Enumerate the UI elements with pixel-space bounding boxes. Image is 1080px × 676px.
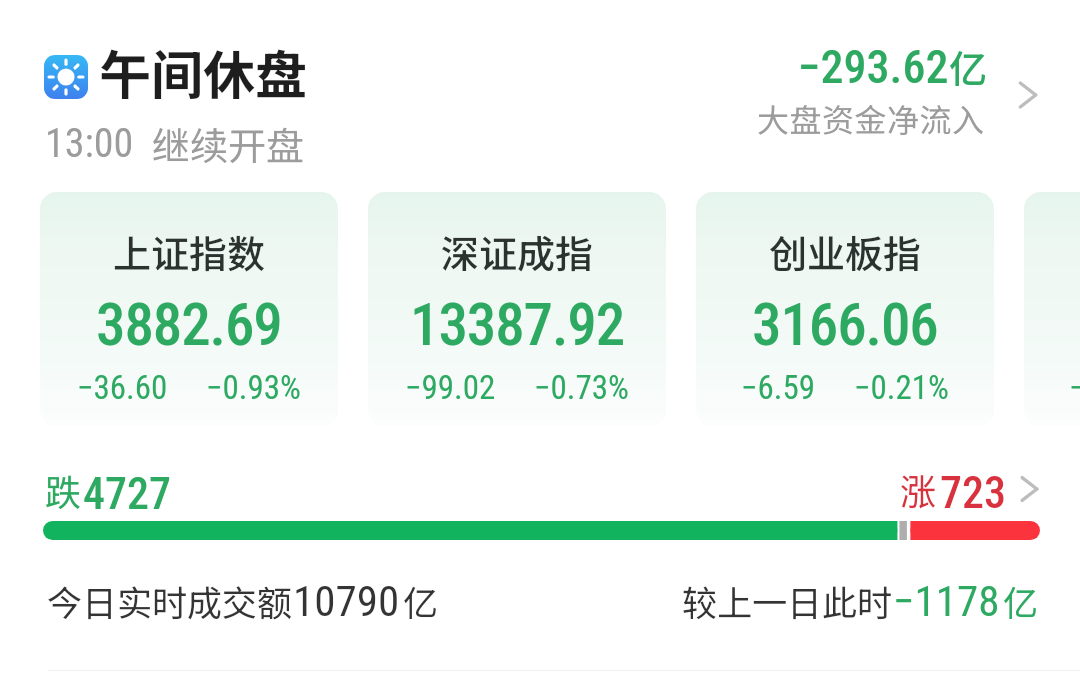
staticText: 今日实时成交额 — [47, 575, 293, 625]
button[interactable]: 科创50 — [1024, 192, 1080, 426]
staticText: 较上一日此时 — [682, 575, 893, 625]
staticText: 大盘资金净流入 — [757, 95, 985, 141]
staticText: −3.21 — [1069, 368, 1080, 407]
staticText: −36.60 — [77, 368, 168, 407]
staticText: 3166.06 — [752, 290, 938, 359]
button[interactable]: 创业板指 — [696, 192, 994, 426]
staticText: 13:00 — [45, 120, 134, 167]
staticText: −1178 — [893, 576, 1000, 626]
button[interactable]: 深证成指 — [368, 192, 666, 426]
staticText: 亿 — [949, 39, 988, 94]
staticText: 深证成指 — [441, 224, 594, 279]
button[interactable]: 上证指数 — [40, 192, 338, 426]
staticText: −99.02 — [405, 368, 496, 407]
staticText: 跌 — [45, 464, 82, 512]
staticText: 10790 — [293, 576, 400, 626]
button[interactable]: 跌 — [0, 462, 1080, 510]
staticText: −0.73% — [534, 368, 629, 407]
button[interactable]: 午间休盘 — [0, 0, 1080, 192]
staticText: 继续开盘 — [152, 116, 305, 171]
staticText: −0.93% — [206, 368, 301, 407]
staticText: 亿 — [403, 575, 439, 625]
staticText: −6.59 — [741, 368, 816, 407]
staticText: 3882.69 — [96, 290, 282, 359]
staticText: 涨 — [900, 463, 937, 511]
staticText: −0.21% — [854, 368, 949, 407]
staticText: 723 — [940, 467, 1006, 515]
staticText: 13387.92 — [410, 290, 625, 359]
staticText: 4727 — [83, 468, 171, 516]
staticText: −293.62 — [798, 40, 949, 94]
staticText: 午间休盘 — [99, 34, 308, 109]
staticText: 创业板指 — [769, 224, 922, 279]
staticText: 亿 — [1003, 575, 1039, 625]
staticText: 上证指数 — [113, 224, 266, 279]
